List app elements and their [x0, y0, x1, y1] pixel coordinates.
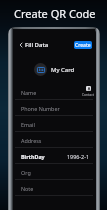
button[interactable]: Back — [16, 40, 26, 50]
staticText: Create — [75, 42, 91, 49]
staticText: Fill Data — [25, 41, 49, 49]
button[interactable]: Email — [13, 116, 96, 132]
button[interactable]: Org — [13, 164, 96, 180]
staticText: My Card — [51, 66, 75, 74]
staticText: Phone Number — [21, 105, 60, 112]
button[interactable]: Contact — [82, 86, 94, 96]
button[interactable]: Phone Number — [13, 100, 96, 116]
button[interactable]: Create — [74, 41, 92, 49]
staticText: BirthDay — [21, 153, 45, 160]
button[interactable]: My Card — [34, 63, 76, 76]
staticText: Email — [21, 121, 35, 128]
button[interactable]: BirthDay — [13, 148, 96, 164]
button[interactable]: Address — [13, 132, 96, 148]
button[interactable]: Note — [13, 180, 96, 196]
button[interactable]: Name — [13, 84, 96, 100]
staticText: Contact — [82, 92, 94, 96]
staticText: 1996-2-1 — [67, 153, 89, 160]
staticText: Address — [21, 137, 42, 144]
staticText: Create QR Code — [14, 6, 96, 21]
staticText: Org — [21, 169, 31, 176]
staticText: Name — [21, 89, 37, 96]
staticText: Note — [21, 185, 34, 192]
